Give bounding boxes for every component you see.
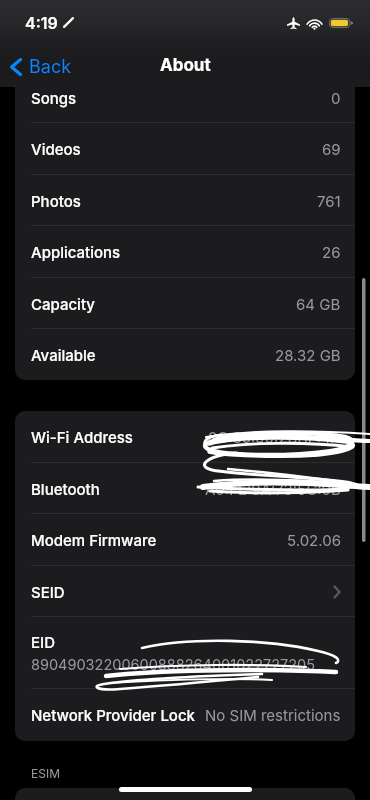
button[interactable]: Videos xyxy=(15,123,355,175)
button[interactable]: Songs xyxy=(15,87,355,123)
staticText: Modem Firmware xyxy=(31,531,287,549)
staticText: 28.32 GB xyxy=(275,346,341,364)
staticText: 761 xyxy=(317,192,341,210)
staticText: 4:19 xyxy=(25,13,58,32)
staticText: Capacity xyxy=(31,295,296,313)
button[interactable]: Back xyxy=(0,49,82,83)
button[interactable]: Photos xyxy=(15,175,355,226)
staticText: 8C:85:90:2B:1F:4A xyxy=(208,428,341,446)
staticText: 69 xyxy=(322,140,341,158)
staticText: No SIM restrictions xyxy=(205,706,341,724)
staticText: ESIM xyxy=(31,766,60,781)
staticText: Videos xyxy=(31,140,322,158)
staticText: Network Provider Lock xyxy=(31,706,205,724)
staticText: Songs xyxy=(31,89,331,107)
staticText: Applications xyxy=(31,243,322,261)
button[interactable]: SEID xyxy=(15,566,355,617)
staticText: 89049032200600888264001022727205 xyxy=(31,656,316,674)
button[interactable]: Bluetooth xyxy=(15,463,355,514)
button[interactable]: Capacity xyxy=(15,278,355,329)
staticText: Wi-Fi Address xyxy=(31,428,208,446)
button[interactable]: Modem Firmware xyxy=(15,514,355,566)
button[interactable]: Available xyxy=(15,329,355,380)
staticText: Bluetooth xyxy=(31,480,205,498)
staticText: 64 GB xyxy=(296,295,341,313)
staticText: About xyxy=(160,55,211,76)
staticText: 0 xyxy=(331,89,341,107)
staticText: Available xyxy=(31,346,275,364)
button[interactable]: Applications xyxy=(15,226,355,278)
staticText: SEID xyxy=(31,583,331,601)
staticText: 5.02.06 xyxy=(287,531,341,549)
staticText: Photos xyxy=(31,192,317,210)
button[interactable]: EID xyxy=(15,617,355,689)
staticText: EID xyxy=(31,633,55,651)
staticText: 26 xyxy=(322,243,341,261)
staticText: Back xyxy=(29,56,72,78)
button[interactable]: Wi-Fi Address xyxy=(15,411,355,463)
button[interactable]: Network Provider Lock xyxy=(15,689,355,741)
staticText: A0:FE:9A:73:5C:0B xyxy=(205,480,341,498)
